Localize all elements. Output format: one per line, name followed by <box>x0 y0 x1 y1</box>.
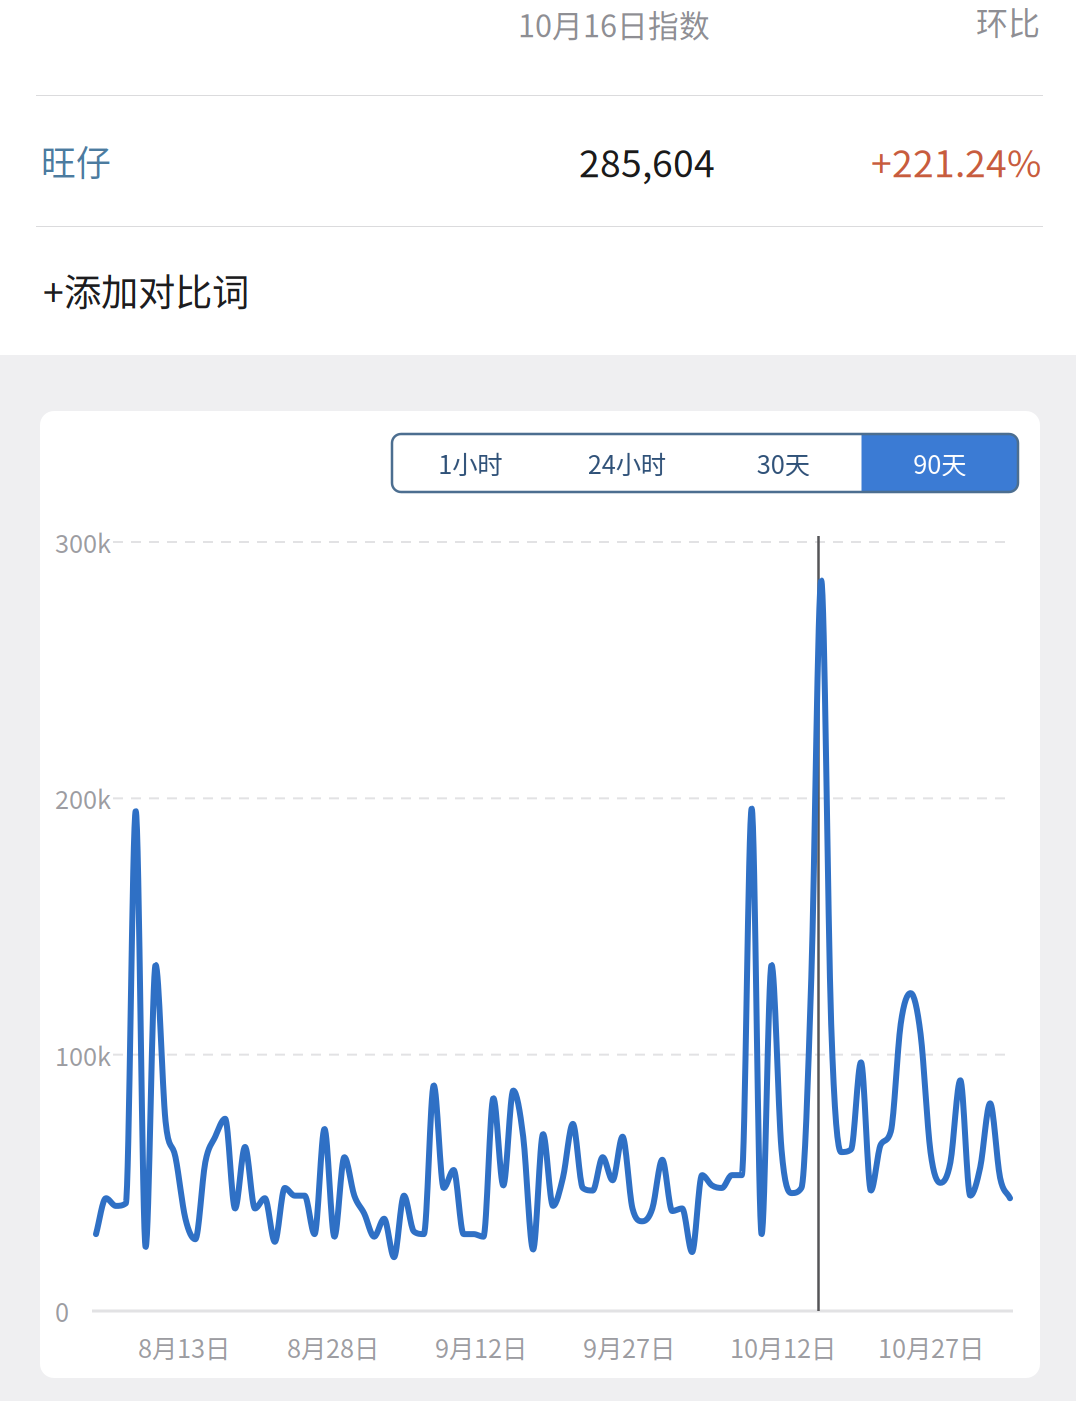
button[interactable]: 旺仔 <box>0 96 1076 226</box>
staticText: 9月12日 <box>435 1329 527 1365</box>
staticText: 10月27日 <box>878 1329 984 1365</box>
staticText: 30天 <box>757 445 810 481</box>
staticText: 24小时 <box>588 445 666 481</box>
staticText: 环比 <box>976 0 1040 44</box>
staticText: +221.24% <box>871 134 1041 188</box>
staticText: 285,604 <box>579 134 715 188</box>
button[interactable]: 1小时 <box>392 434 548 492</box>
staticText: 旺仔 <box>41 136 111 186</box>
staticText: 10月16日指数 <box>518 2 710 46</box>
staticText: 8月28日 <box>287 1329 379 1365</box>
staticText: 0 <box>55 1293 69 1329</box>
staticText: 300k <box>55 524 111 560</box>
staticText: +添加对比词 <box>43 263 249 317</box>
staticText: 9月27日 <box>583 1329 675 1365</box>
staticText: 10月12日 <box>730 1329 836 1365</box>
button[interactable]: 30天 <box>705 434 861 492</box>
button[interactable]: 24小时 <box>548 434 705 492</box>
button[interactable]: +添加对比词 <box>0 227 1076 355</box>
staticText: 100k <box>55 1037 111 1073</box>
staticText: 90天 <box>913 445 966 481</box>
staticText: 8月13日 <box>138 1329 230 1365</box>
staticText: 200k <box>55 780 111 816</box>
staticText: 1小时 <box>438 445 502 481</box>
button[interactable]: 90天 <box>861 434 1018 492</box>
